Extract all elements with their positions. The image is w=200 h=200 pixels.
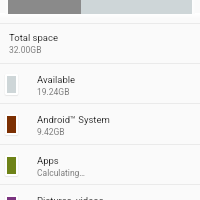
staticText: Available: [37, 74, 76, 85]
staticText: 32.00GB: [9, 45, 42, 55]
staticText: Calculating…: [37, 168, 86, 178]
staticText: Pictures, videos: [37, 195, 104, 200]
button[interactable]: Available: [0, 63, 200, 103]
staticText: 9.42GB: [37, 127, 65, 137]
button[interactable]: Android™ System: [0, 103, 200, 143]
staticText: 19.24GB: [37, 87, 70, 97]
staticText: Total space: [9, 32, 58, 43]
staticText: Apps: [37, 155, 59, 166]
button[interactable]: Pictures, videos: [0, 184, 200, 200]
staticText: Android™ System: [37, 114, 110, 125]
button[interactable]: Apps: [0, 144, 200, 184]
button[interactable]: Total space: [0, 23, 200, 63]
